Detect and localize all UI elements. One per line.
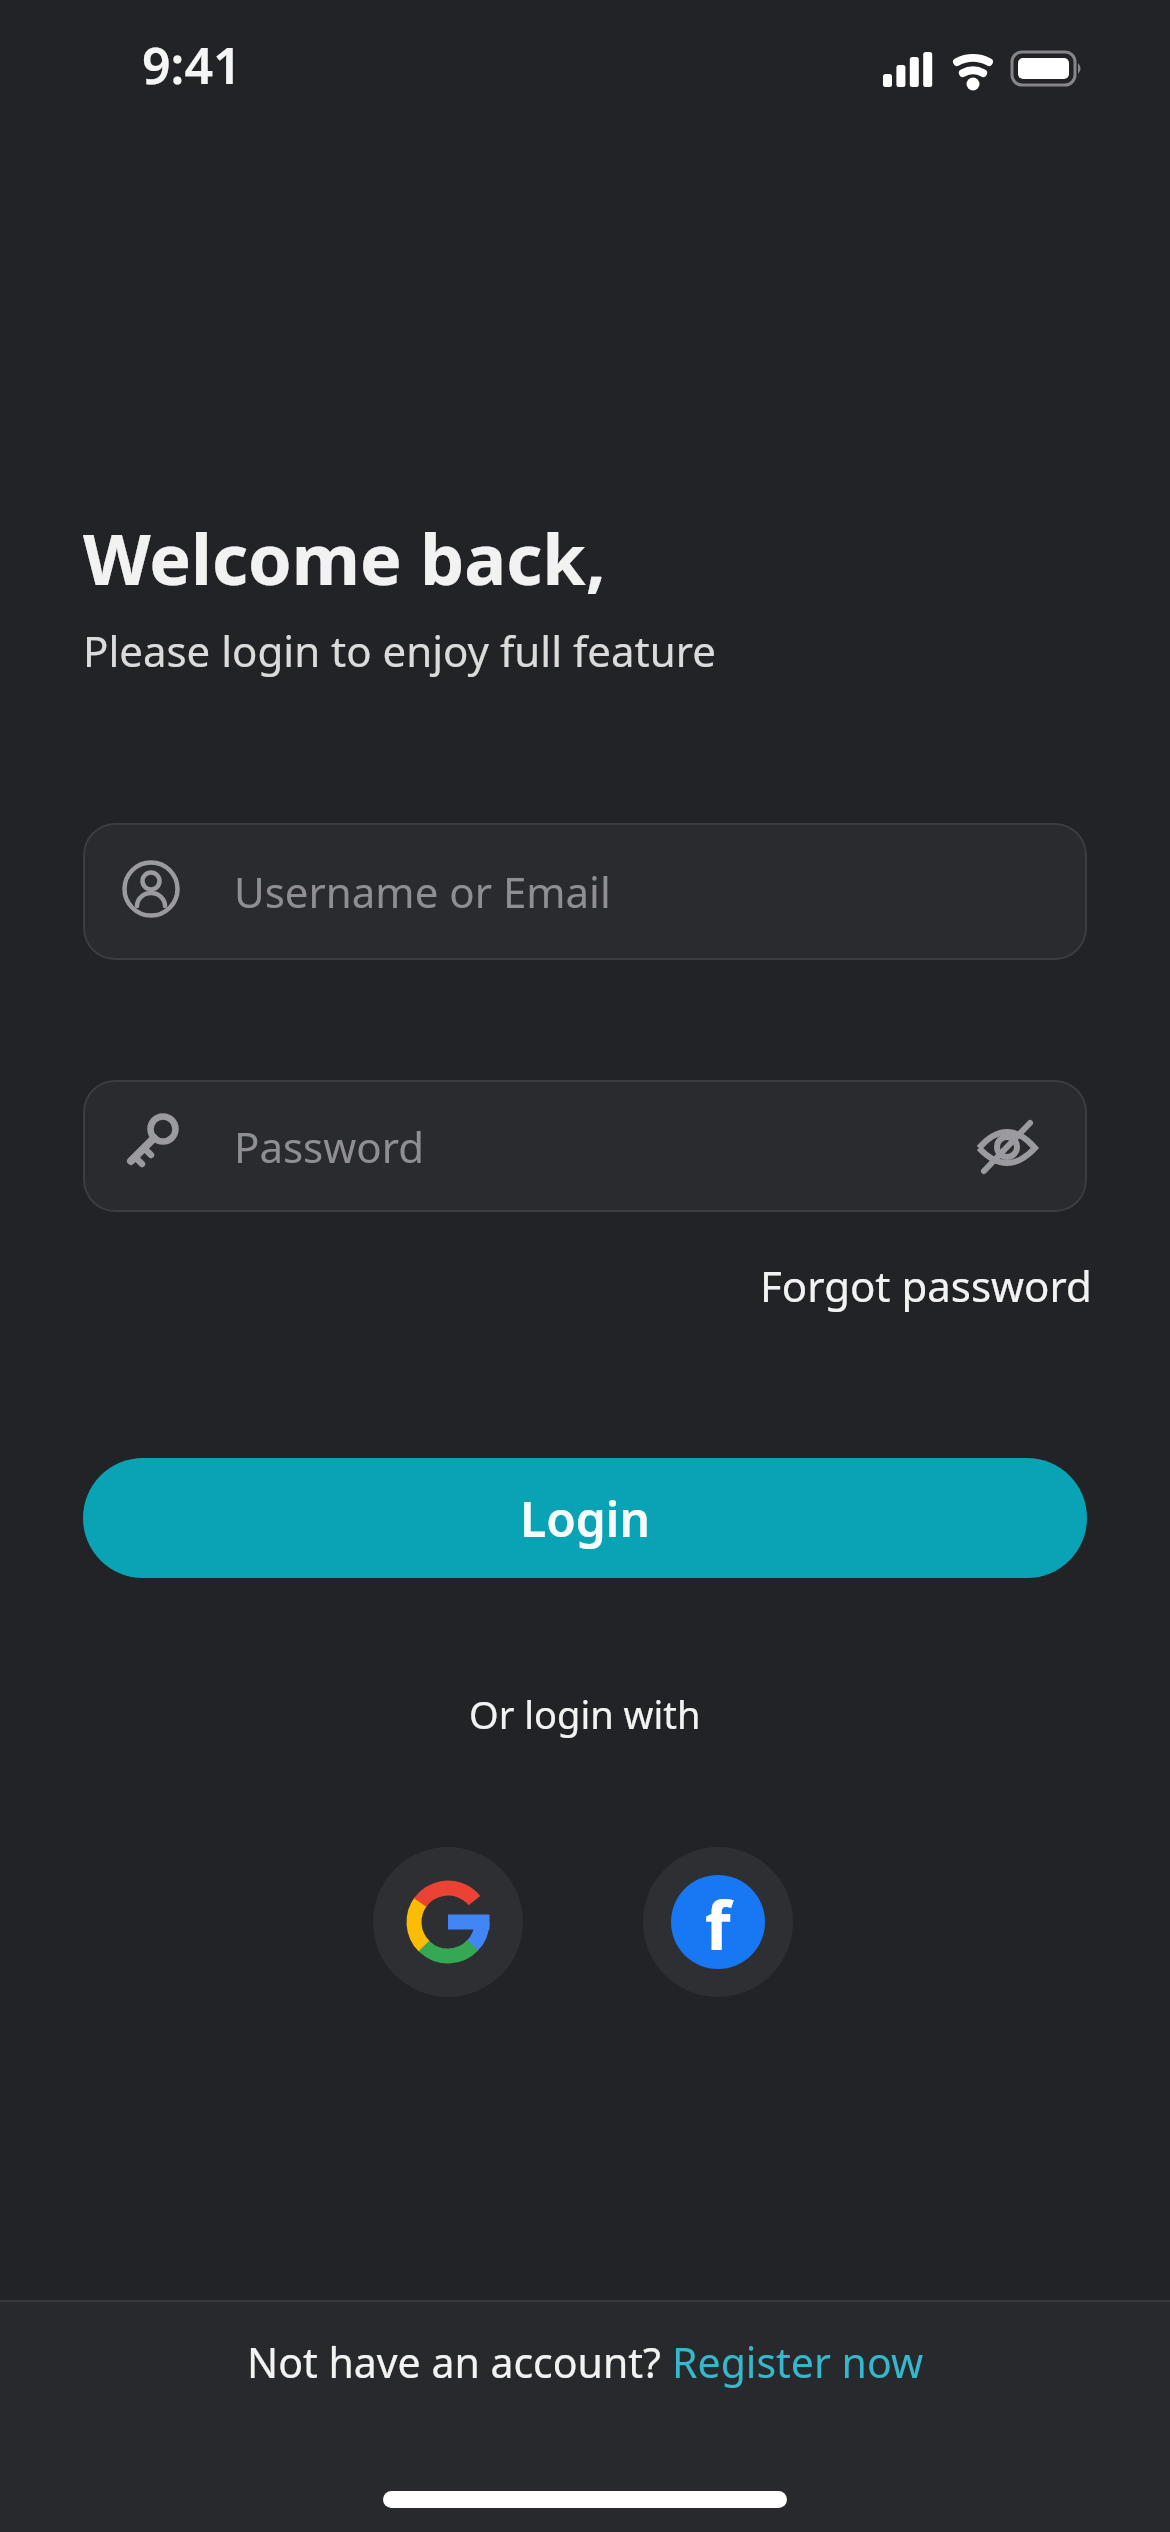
button[interactable]: Register now (672, 2334, 924, 2390)
staticText: Not have an account? (247, 2334, 672, 2390)
staticText: Or login with (469, 1688, 701, 1740)
staticText: Login (520, 1486, 651, 1551)
button[interactable]: Username or Email (83, 823, 1087, 960)
button[interactable] (975, 1114, 1039, 1178)
button[interactable] (373, 1847, 523, 1997)
button[interactable]: Login (83, 1458, 1087, 1578)
staticText: 9:41 (142, 31, 242, 99)
staticText: Please login to enjoy full feature (83, 622, 716, 679)
button[interactable]: f (643, 1847, 793, 1997)
staticText: f (705, 1879, 731, 1969)
staticText: Welcome back, (83, 510, 606, 605)
button[interactable]: Password (83, 1080, 1087, 1212)
staticText: Username or Email (234, 863, 611, 920)
staticText: Password (234, 1118, 424, 1175)
button[interactable]: Forgot password (760, 1257, 1092, 1314)
